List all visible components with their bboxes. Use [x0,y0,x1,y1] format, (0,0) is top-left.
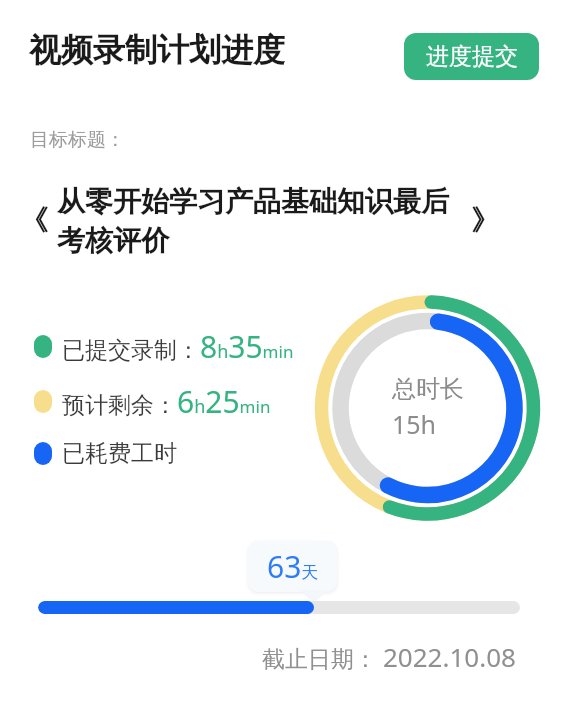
staticText: 截止日期： 2022.10.08 [262,639,516,674]
button[interactable]: 63天 [248,541,337,592]
staticText: 已提交录制：8h35min [62,326,294,367]
staticText: 目标标题： [30,128,125,152]
button[interactable]: 已提交录制：8h35min [34,324,294,368]
staticText: 预计剩余：6h25min [62,381,271,422]
button[interactable]: 进度提交 [404,33,539,80]
staticText: 已耗费工时 [62,439,177,468]
button[interactable]: 预计剩余：6h25min [34,379,271,423]
staticText: 15h [392,407,437,441]
staticText: 63天 [267,546,319,587]
staticText: 进度提交 [426,42,518,71]
staticText: 从零开始学习产品基础知识最后 考核评价 [57,184,449,258]
staticText: 》 [471,203,499,238]
staticText: 视频录制计划进度 [29,30,285,70]
button[interactable]: 已耗费工时 [34,431,177,475]
staticText: 《 [20,203,48,238]
staticText: 总时长 [392,374,464,404]
